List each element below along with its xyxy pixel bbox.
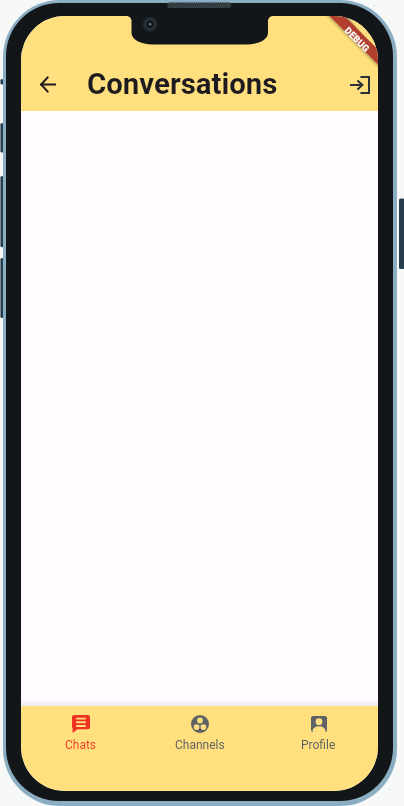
- button[interactable]: Chats: [21, 706, 140, 752]
- staticText: DEBUG: [343, 25, 372, 54]
- staticText: Chats: [65, 738, 97, 752]
- button[interactable]: Profile: [259, 706, 378, 752]
- staticText: Conversations: [87, 67, 278, 101]
- staticText: Profile: [301, 738, 336, 752]
- button[interactable]: Channels: [140, 706, 259, 752]
- button[interactable]: Logout: [343, 68, 376, 101]
- staticText: Channels: [175, 738, 225, 752]
- button[interactable]: Back: [31, 68, 64, 101]
